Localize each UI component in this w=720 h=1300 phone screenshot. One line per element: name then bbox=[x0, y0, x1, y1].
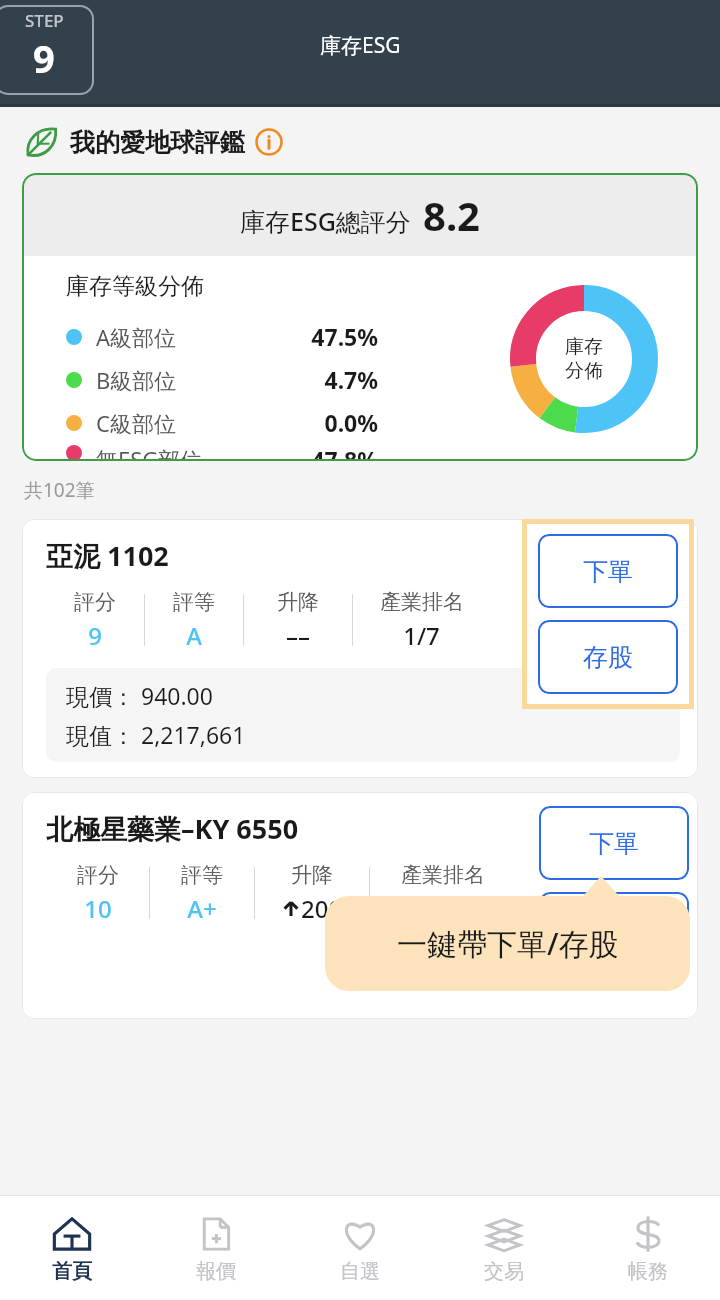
button[interactable]: 報價 bbox=[144, 1196, 288, 1300]
staticText: 1/7 bbox=[403, 619, 440, 652]
staticText: 亞泥 1102 bbox=[46, 537, 169, 574]
staticText: 8.2 bbox=[423, 188, 480, 242]
staticText: 首頁 bbox=[52, 1259, 92, 1284]
button[interactable]: 自選 bbox=[288, 1196, 432, 1300]
button[interactable]: 存股 bbox=[539, 892, 689, 966]
staticText: 庫存 bbox=[565, 335, 603, 359]
button[interactable]: Information bbox=[255, 128, 283, 156]
staticText: A bbox=[186, 619, 202, 652]
staticText: 升降 bbox=[277, 589, 319, 615]
staticText: 200 bbox=[301, 892, 343, 925]
staticText: 0.0% bbox=[324, 407, 378, 438]
staticText: 我的愛地球評鑑 bbox=[70, 127, 245, 158]
staticText: 自選 bbox=[340, 1259, 380, 1284]
staticText: 分佈 bbox=[565, 359, 603, 383]
button[interactable]: 帳務 bbox=[576, 1196, 720, 1300]
staticText: 現價： 940.00 bbox=[66, 680, 213, 711]
staticText: 200/238 bbox=[397, 892, 489, 925]
staticText: 庫存ESG bbox=[320, 31, 401, 60]
staticText: STEP bbox=[25, 9, 64, 32]
staticText: 下單 bbox=[589, 828, 639, 859]
staticText: A+ bbox=[187, 892, 217, 925]
staticText: 下單 bbox=[583, 556, 633, 587]
staticText: 北極星藥業–KY 6550 bbox=[46, 810, 299, 847]
button[interactable]: 下單 bbox=[539, 806, 689, 880]
staticText: 一鍵帶下單/存股 bbox=[397, 923, 619, 964]
staticText: A級部位 bbox=[96, 322, 177, 352]
button[interactable]: 存股 bbox=[538, 620, 678, 694]
staticText: –– bbox=[286, 619, 310, 652]
staticText: 無ESG部位 bbox=[96, 444, 203, 461]
staticText: 帳務 bbox=[628, 1259, 668, 1284]
staticText: 庫存ESG總評分 bbox=[240, 204, 411, 238]
staticText: 9 bbox=[88, 619, 102, 652]
staticText: 評分 bbox=[77, 862, 119, 888]
staticText: 交易 bbox=[484, 1259, 524, 1284]
staticText: 存股 bbox=[589, 914, 639, 945]
staticText: 評等 bbox=[181, 862, 223, 888]
staticText: 報價 bbox=[196, 1259, 236, 1284]
staticText: 評分 bbox=[74, 589, 116, 615]
button[interactable]: 交易 bbox=[432, 1196, 576, 1300]
staticText: 庫存等級分佈 bbox=[66, 272, 204, 301]
staticText: 產業排名 bbox=[380, 589, 464, 615]
staticText: 共102筆 bbox=[24, 477, 95, 503]
staticText: 存股 bbox=[583, 642, 633, 673]
staticText: C級部位 bbox=[96, 408, 176, 438]
staticText: 現值： 2,217,661 bbox=[66, 719, 246, 750]
staticText: 4.7% bbox=[324, 364, 378, 395]
staticText: B級部位 bbox=[96, 365, 177, 395]
staticText: 10 bbox=[84, 892, 112, 925]
staticText: 9 bbox=[33, 32, 55, 84]
staticText: 47.5% bbox=[311, 321, 378, 352]
staticText: 產業排名 bbox=[401, 862, 485, 888]
button[interactable]: 首頁 bbox=[0, 1196, 144, 1300]
staticText: 升降 bbox=[291, 862, 333, 888]
staticText: 47.8% bbox=[311, 444, 378, 461]
button[interactable]: 下單 bbox=[538, 534, 678, 608]
staticText: 評等 bbox=[173, 589, 215, 615]
